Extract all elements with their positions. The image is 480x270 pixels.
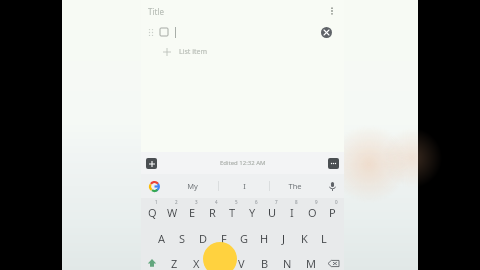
button[interactable]: Add [146,158,157,169]
button[interactable]: M [299,250,322,270]
staticText: A [158,231,166,246]
button[interactable]: 9 [302,198,322,224]
button[interactable]: N [276,250,299,270]
staticText: I [290,205,294,220]
staticText: T [229,205,236,220]
staticText: List item [179,47,207,57]
staticText: U [268,205,277,220]
button[interactable]: Checkbox [141,22,344,42]
button[interactable]: My [167,174,218,198]
staticText: B [261,256,269,270]
staticText: Edited 12:32 AM [220,159,266,167]
staticText: 2 [175,199,178,205]
staticText: 4 [215,199,218,205]
staticText: Title [148,6,164,17]
button[interactable]: 6 [242,198,262,224]
staticText: R [209,205,216,220]
staticText: N [283,256,292,270]
staticText: X [193,256,200,270]
staticText: F [221,231,227,246]
button[interactable]: S [172,224,193,250]
button[interactable]: L [314,224,334,250]
button[interactable]: V [230,250,253,270]
staticText: The [288,181,302,191]
staticText: G [240,231,249,246]
staticText: 3 [195,199,198,205]
staticText: J [282,231,286,246]
staticText: K [301,231,308,246]
staticText: 8 [295,199,298,205]
staticText: Q [148,205,157,220]
staticText: 7 [275,199,278,205]
staticText: D [199,231,208,246]
button[interactable]: B [253,250,276,270]
button[interactable]: 8 [282,198,302,224]
button[interactable]: K [294,224,314,250]
button[interactable]: More [328,158,339,169]
button[interactable]: 7 [262,198,282,224]
button[interactable]: List item [141,42,344,62]
button[interactable]: 2 [162,198,182,224]
staticText: W [167,205,178,220]
button[interactable]: I [219,174,269,198]
button[interactable]: 3 [182,198,202,224]
button[interactable]: 5 [222,198,242,224]
button[interactable]: Google [141,174,167,198]
button[interactable]: Remove item [321,27,332,38]
staticText: H [260,231,269,246]
button[interactable]: G [234,224,254,250]
button[interactable]: Backspace [322,250,344,270]
staticText: 5 [235,199,238,205]
button[interactable]: Z [163,250,185,270]
button[interactable]: A [151,224,172,250]
button[interactable]: More options [324,3,340,19]
button[interactable]: F [214,224,234,250]
button[interactable]: 1 [143,198,162,224]
button[interactable]: J [274,224,294,250]
staticText: I [243,181,246,191]
staticText: 0 [335,199,338,205]
staticText: 6 [255,199,258,205]
staticText: E [189,205,196,220]
button[interactable]: Checkbox [159,27,169,37]
staticText: P [329,205,336,220]
staticText: 1 [155,199,158,205]
staticText: V [238,256,245,270]
staticText: My [187,181,198,191]
button[interactable]: H [254,224,274,250]
staticText: S [179,231,186,246]
staticText: L [321,231,327,246]
button[interactable]: Voice input [320,174,344,198]
staticText: Y [249,205,256,220]
button[interactable]: 4 [202,198,222,224]
button[interactable]: Shift [141,250,163,270]
staticText: O [308,205,317,220]
button[interactable]: D [193,224,214,250]
staticText: M [306,256,316,270]
button[interactable]: X [185,250,207,270]
button[interactable]: The [270,174,320,198]
staticText: Z [171,256,178,270]
staticText: 9 [315,199,318,205]
button[interactable]: 0 [322,198,342,224]
